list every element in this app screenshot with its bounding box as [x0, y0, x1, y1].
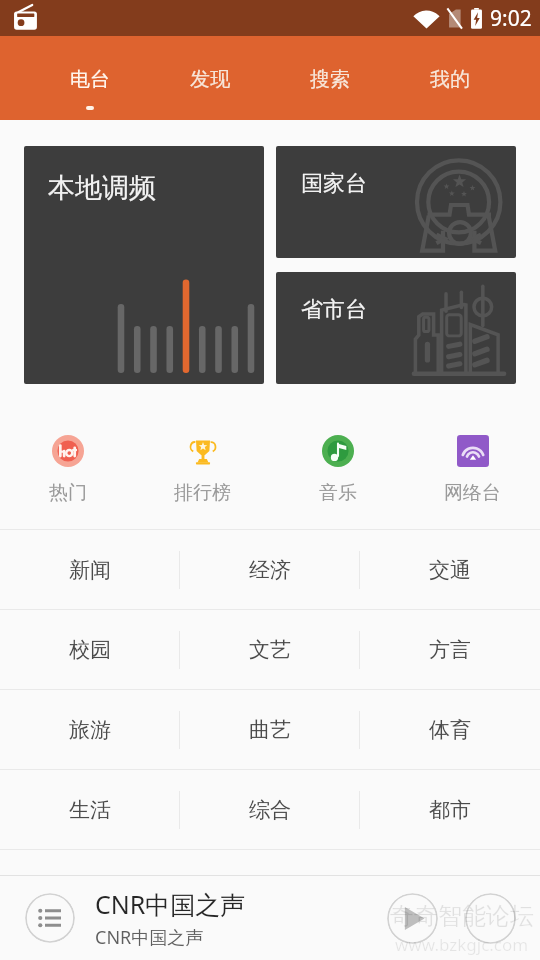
button[interactable]: 生活: [0, 770, 180, 849]
button[interactable]: Next: [465, 893, 516, 944]
button[interactable]: 经济: [180, 530, 360, 609]
staticText: 旅游: [69, 717, 111, 743]
staticText: 都市: [429, 797, 471, 823]
staticText: 新闻: [69, 557, 111, 583]
staticText: 热门: [49, 481, 87, 505]
button[interactable]: 体育: [360, 690, 540, 769]
button[interactable]: 我的: [390, 36, 510, 120]
staticText: 国家台: [301, 170, 367, 198]
staticText: 9:02: [490, 4, 532, 33]
button[interactable]: 校园: [0, 610, 180, 689]
button[interactable]: 网络台: [405, 384, 540, 529]
button[interactable]: 曲艺: [180, 690, 360, 769]
button[interactable]: 综合: [180, 770, 360, 849]
button[interactable]: 都市: [360, 770, 540, 849]
button[interactable]: 省市台: [276, 272, 516, 384]
button[interactable]: 排行榜: [135, 384, 270, 529]
button[interactable]: 电台: [30, 36, 150, 120]
button[interactable]: 热门: [0, 384, 135, 529]
staticText: CNR中国之声: [95, 887, 246, 921]
staticText: 文艺: [249, 637, 291, 663]
staticText: 我的: [430, 67, 470, 92]
staticText: 本地调频: [48, 171, 156, 205]
button[interactable]: 发现: [150, 36, 270, 120]
staticText: 曲艺: [249, 717, 291, 743]
button[interactable]: 本地调频: [24, 146, 264, 384]
staticText: 网络台: [444, 481, 501, 505]
staticText: 音乐: [319, 481, 357, 505]
staticText: 排行榜: [174, 481, 231, 505]
button[interactable]: 音乐: [270, 384, 405, 529]
staticText: CNR中国之声: [95, 925, 204, 950]
staticText: 综合: [249, 797, 291, 823]
button[interactable]: 方言: [360, 610, 540, 689]
staticText: 交通: [429, 557, 471, 583]
button[interactable]: 旅游: [0, 690, 180, 769]
button[interactable]: 交通: [360, 530, 540, 609]
button[interactable]: Playlist: [25, 893, 75, 943]
button[interactable]: 搜索: [270, 36, 390, 120]
staticText: 搜索: [310, 67, 350, 92]
staticText: 经济: [249, 557, 291, 583]
button[interactable]: 文艺: [180, 610, 360, 689]
staticText: 体育: [429, 717, 471, 743]
button[interactable]: Play: [387, 893, 438, 944]
button[interactable]: 国家台: [276, 146, 516, 258]
button[interactable]: 新闻: [0, 530, 180, 609]
staticText: 生活: [69, 797, 111, 823]
staticText: 电台: [70, 67, 110, 92]
staticText: 方言: [429, 637, 471, 663]
staticText: www.bzkgjc.com: [395, 933, 529, 956]
staticText: 省市台: [301, 296, 367, 324]
staticText: 发现: [190, 67, 230, 92]
staticText: 奇奇智能论坛: [390, 901, 534, 931]
staticText: 校园: [69, 637, 111, 663]
